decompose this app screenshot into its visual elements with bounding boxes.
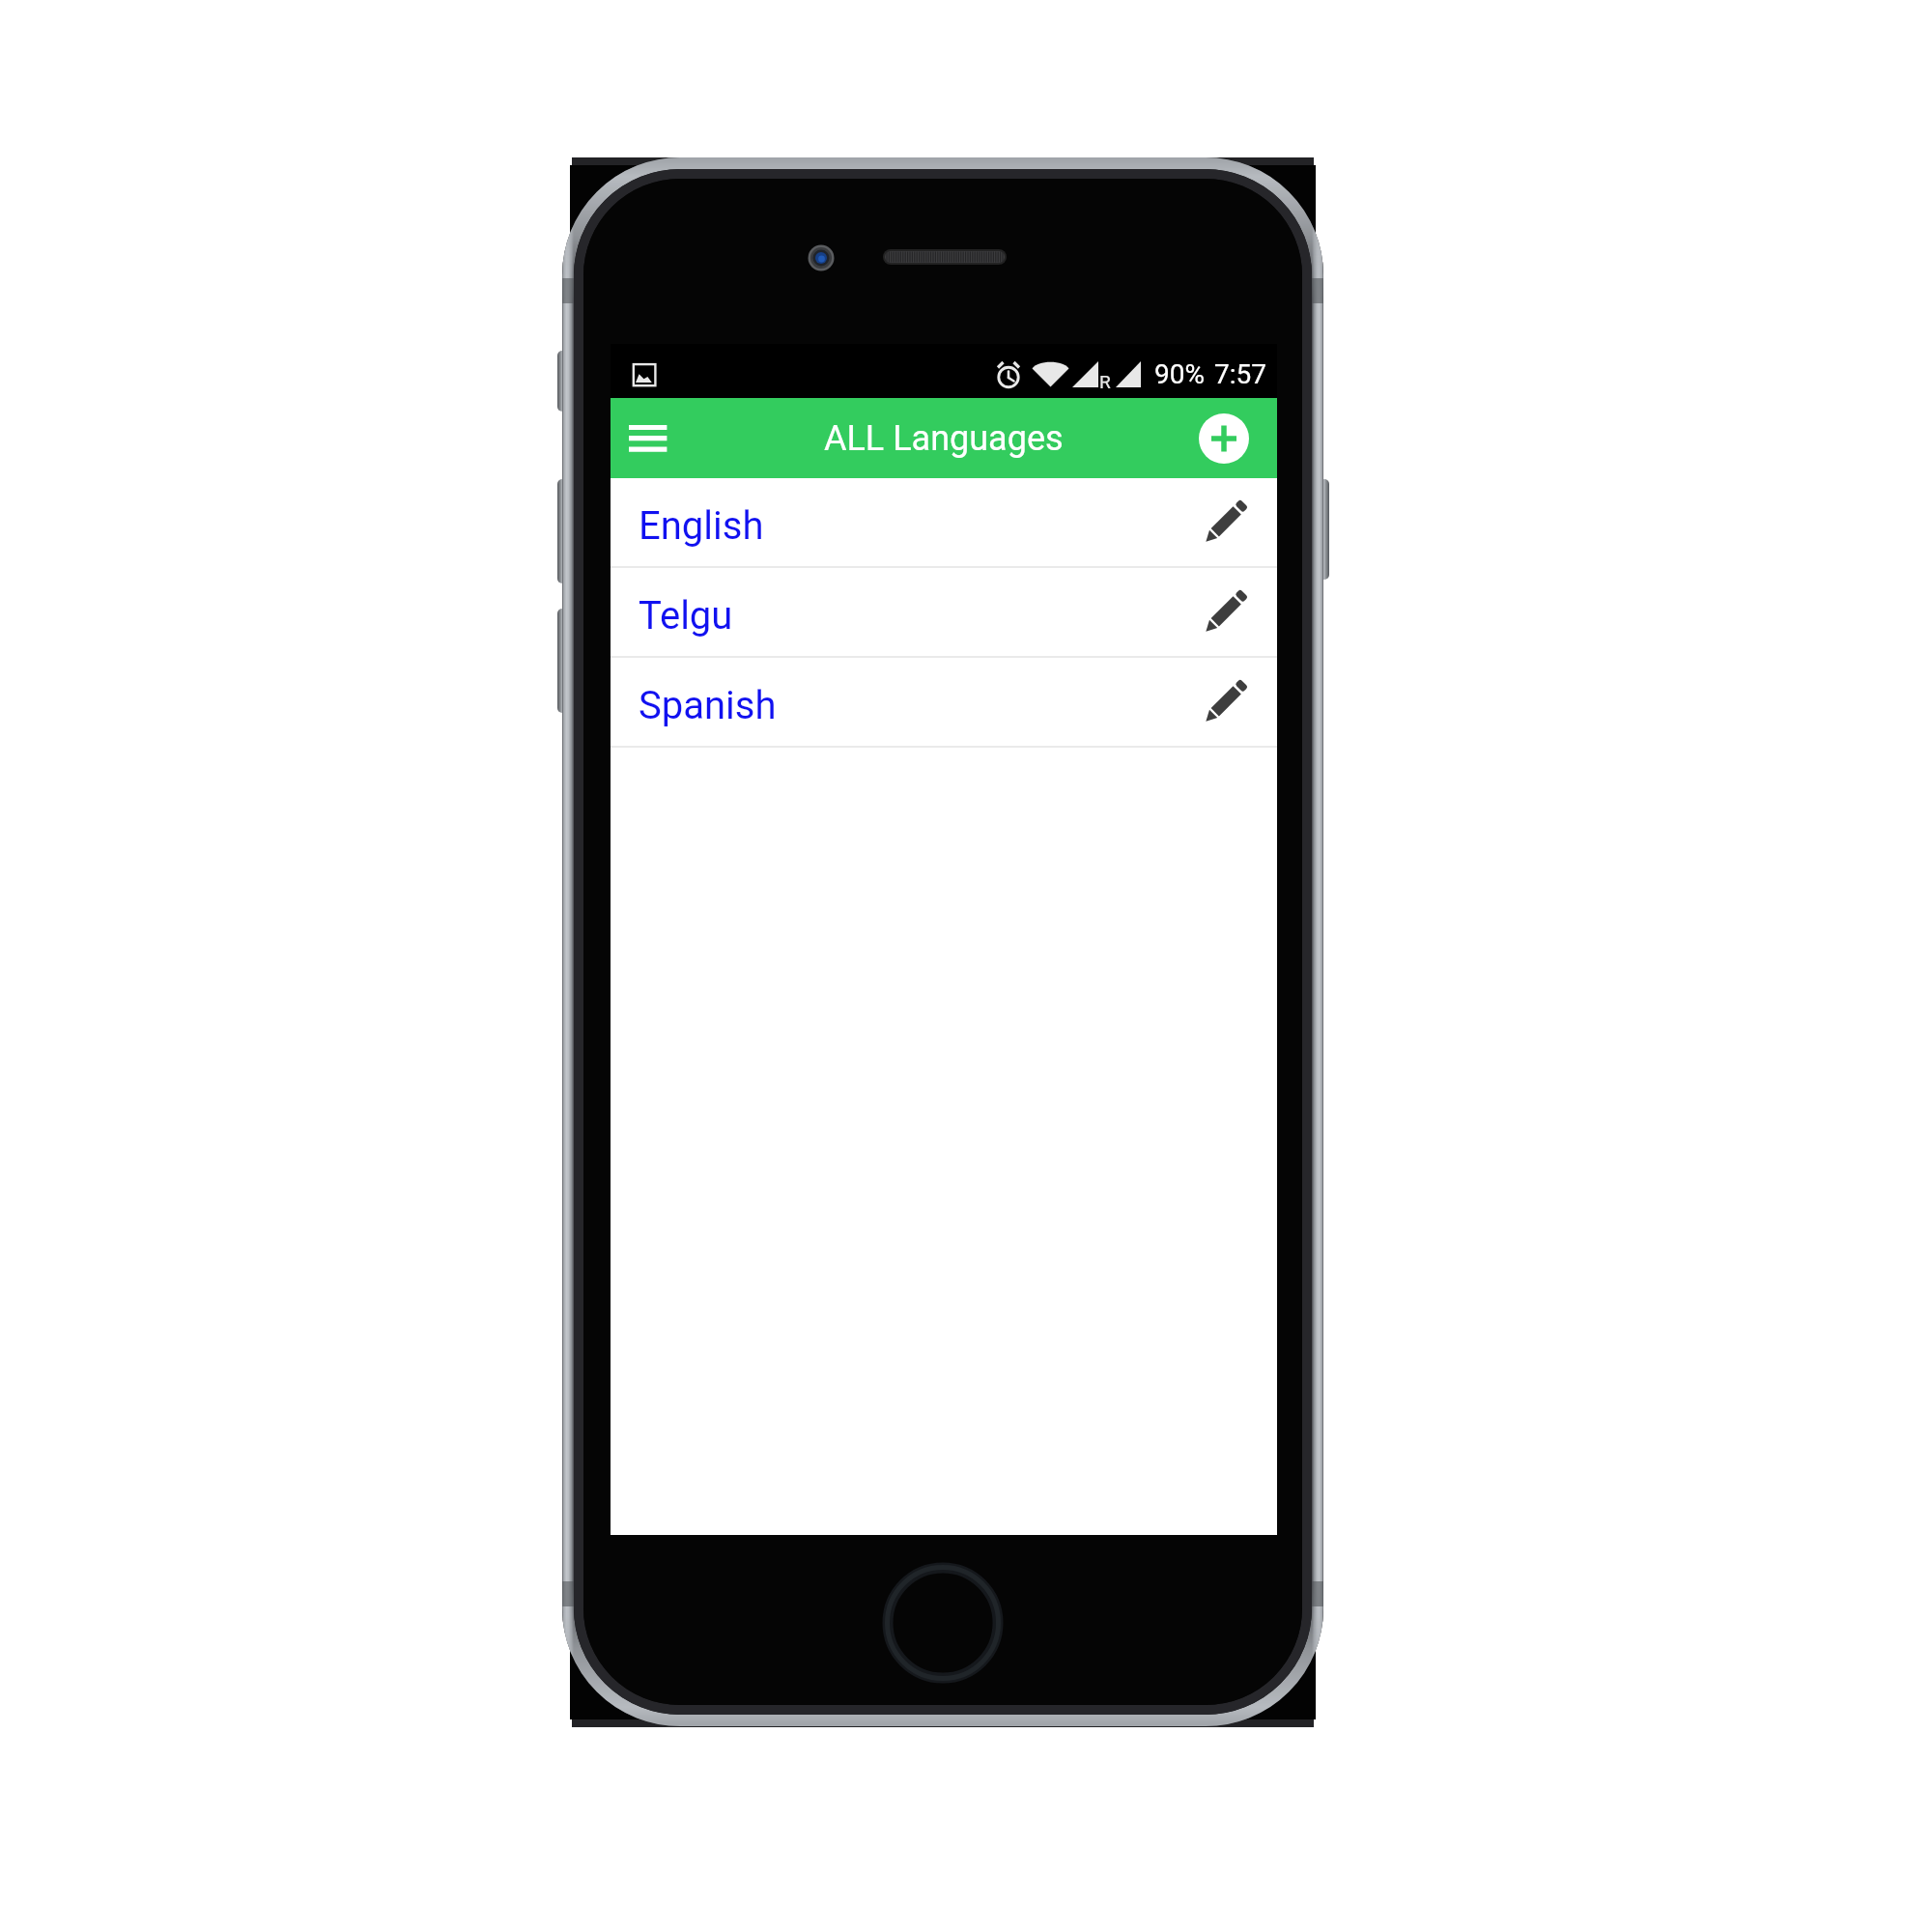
- button[interactable]: Open navigation menu: [615, 398, 693, 478]
- staticText: 7:57: [1214, 358, 1266, 390]
- button[interactable]: English: [611, 478, 1277, 568]
- button[interactable]: Edit Telgu: [1197, 582, 1255, 640]
- staticText: English: [639, 503, 764, 549]
- staticText: ALL Languages: [824, 418, 1064, 459]
- staticText: 90%: [1154, 358, 1205, 390]
- button[interactable]: Edit Spanish: [1197, 672, 1255, 730]
- button[interactable]: Spanish: [611, 658, 1277, 748]
- staticText: Telgu: [639, 593, 733, 639]
- button[interactable]: Telgu: [611, 568, 1277, 658]
- button[interactable]: Edit English: [1197, 493, 1255, 551]
- staticText: Spanish: [639, 683, 777, 728]
- staticText: R: [1099, 371, 1111, 392]
- button[interactable]: Add language: [1199, 413, 1249, 464]
